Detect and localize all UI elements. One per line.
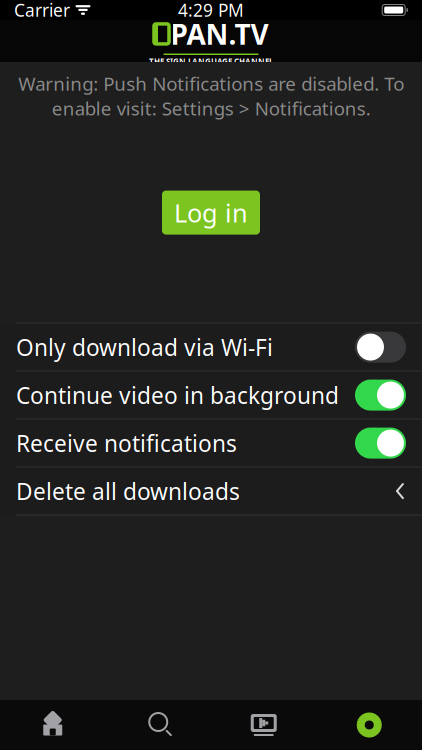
button[interactable]: Log in [162,191,260,235]
staticText: Receive notifications [16,428,237,458]
button[interactable]: Continue video in background [0,372,422,419]
staticText: Warning: Push Notifications are disabled… [18,71,404,121]
staticText: Only download via Wi-Fi [16,332,273,362]
staticText: PAN.TV [170,15,268,52]
staticText: Continue video in background [16,380,339,410]
staticText: Delete all downloads [16,476,240,506]
button[interactable]: Home [0,700,105,750]
staticText: THE SIGN LANGUAGE CHANNEL [149,56,273,67]
button[interactable]: Videos [211,700,316,750]
button[interactable]: Settings [316,700,422,750]
button[interactable]: Search [105,700,211,750]
button[interactable]: Only download via Wi-Fi [0,324,422,371]
button[interactable]: Delete all downloads [0,468,422,515]
staticText: 4:29 PM [178,0,244,21]
staticText: Carrier [14,0,70,21]
staticText: Log in [174,196,248,229]
button[interactable]: Receive notifications [0,420,422,467]
